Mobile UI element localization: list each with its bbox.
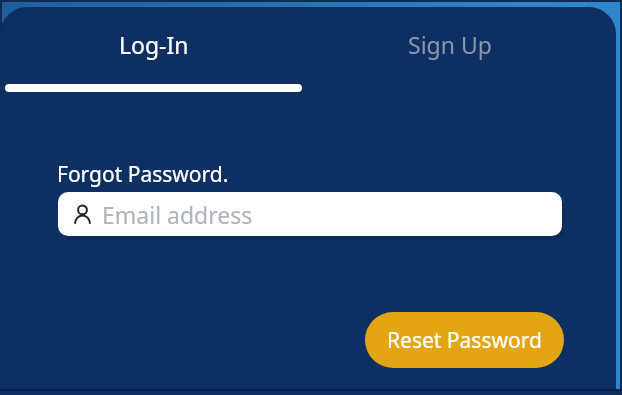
staticText: Log-In bbox=[119, 29, 189, 60]
staticText: Sign Up bbox=[408, 29, 492, 60]
staticText: Email address bbox=[102, 199, 253, 230]
button[interactable]: Email address bbox=[58, 192, 562, 236]
staticText: Reset Password bbox=[387, 326, 542, 355]
button[interactable]: Reset Password bbox=[365, 312, 564, 368]
staticText: Forgot Password. bbox=[57, 160, 229, 189]
button[interactable]: Sign Up bbox=[296, 10, 604, 78]
button[interactable]: Log-In bbox=[0, 10, 308, 78]
